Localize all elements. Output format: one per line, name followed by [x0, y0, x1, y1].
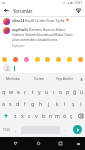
- button[interactable]: Share: [75, 7, 82, 14]
- button[interactable]: e: [15, 85, 22, 97]
- button[interactable]: u: [43, 85, 50, 97]
- button[interactable]: ö: [61, 109, 68, 122]
- button[interactable]: Emoji: [78, 57, 83, 62]
- button[interactable]: i: [77, 97, 85, 109]
- button[interactable]: Home: [27, 137, 49, 150]
- staticText: ,: [15, 127, 17, 132]
- staticText: Paylaşılan: [12, 44, 25, 48]
- button[interactable]: Send: [69, 122, 85, 137]
- staticText: r: [24, 88, 27, 95]
- button[interactable]: q: [0, 85, 8, 97]
- button[interactable]: g: [29, 97, 37, 109]
- button[interactable]: Teşekkürler: [52, 73, 78, 85]
- button[interactable]: p: [64, 85, 71, 97]
- staticText: v: [35, 112, 38, 119]
- button[interactable]: Emoji: [24, 57, 29, 62]
- button[interactable]: f: [21, 97, 29, 109]
- button[interactable]: t: [29, 85, 36, 97]
- staticText: ı: [53, 88, 55, 95]
- button[interactable]: Emoji: [2, 57, 7, 62]
- staticText: u: [45, 88, 49, 95]
- button[interactable]: x: [19, 109, 26, 122]
- staticText: Turizm: [34, 77, 45, 81]
- staticText: Yorumlar: [13, 8, 33, 14]
- button[interactable]: Backspace: [75, 109, 85, 122]
- button[interactable]: Back: [3, 7, 10, 14]
- button[interactable]: n: [47, 109, 54, 122]
- staticText: o: [59, 88, 63, 95]
- staticText: ü: [80, 88, 84, 95]
- staticText: 19:47: [74, 1, 83, 5]
- button[interactable]: Emoji: [35, 57, 40, 62]
- staticText: ?123: [3, 128, 10, 132]
- staticText: a: [2, 100, 5, 107]
- button[interactable]: j: [45, 97, 53, 109]
- staticText: n: [49, 112, 53, 119]
- button[interactable]: Emoji: [45, 57, 50, 62]
- button[interactable]: c: [26, 109, 33, 122]
- button[interactable]: Hide keyboard: [71, 137, 85, 150]
- button[interactable]: ü: [78, 85, 85, 97]
- button[interactable]: s: [7, 97, 14, 109]
- staticText: y: [38, 88, 41, 95]
- button[interactable]: k: [53, 97, 61, 109]
- button[interactable]: ?123: [0, 122, 12, 137]
- staticText: z: [14, 112, 17, 119]
- button[interactable]: o: [57, 85, 64, 97]
- button[interactable]: Recents: [49, 137, 71, 150]
- staticText: .: [64, 127, 66, 132]
- staticText: e: [17, 88, 20, 95]
- staticText: w: [9, 88, 14, 95]
- staticText: x: [21, 112, 24, 119]
- staticText: ş: [72, 100, 75, 107]
- button[interactable]: z: [11, 109, 19, 122]
- staticText: s: [9, 100, 12, 107]
- button[interactable]: d: [14, 97, 21, 109]
- button[interactable]: ulkse24 Keyifli Günler Pınar Teyfik: [0, 18, 85, 25]
- button[interactable]: r: [22, 85, 29, 97]
- button[interactable]: l: [61, 97, 69, 109]
- button[interactable]: ğ: [71, 85, 78, 97]
- button[interactable]: h: [37, 97, 45, 109]
- button[interactable]: Emoji: [67, 57, 72, 62]
- button[interactable]: Shift: [0, 109, 11, 122]
- button[interactable]: Voice input: [78, 73, 85, 85]
- staticText: t: [32, 88, 34, 95]
- button[interactable]: Turizm: [26, 73, 52, 85]
- button[interactable]: Emoji: [13, 57, 18, 62]
- button[interactable]: ,: [12, 122, 20, 137]
- button[interactable]: ı: [50, 85, 57, 97]
- button[interactable]: w: [8, 85, 15, 97]
- staticText: l: [64, 100, 66, 107]
- staticText: m: [55, 112, 60, 119]
- button[interactable]: v: [33, 109, 40, 122]
- button[interactable]: Emoji: [56, 57, 61, 62]
- staticText: ozgeltwllv Daneme Bunusu Haber Sözlerin …: [12, 27, 74, 42]
- staticText: ğ: [73, 88, 77, 95]
- staticText: p: [66, 88, 70, 95]
- button[interactable]: ç: [68, 109, 75, 122]
- staticText: g: [31, 100, 35, 107]
- button[interactable]: y: [36, 85, 43, 97]
- staticText: ulkse24 Keyifli Günler Pınar Teyfik: [12, 18, 65, 22]
- staticText: h: [39, 100, 43, 107]
- button[interactable]: Merhaba: [0, 73, 26, 85]
- staticText: b: [42, 112, 46, 119]
- button[interactable]: a: [0, 97, 7, 109]
- staticText: ö: [63, 112, 67, 119]
- staticText: ç: [70, 112, 73, 119]
- button[interactable]: Back: [4, 137, 27, 150]
- button[interactable]: b: [40, 109, 47, 122]
- button[interactable]: ş: [69, 97, 77, 109]
- staticText: c: [28, 112, 31, 119]
- staticText: k: [56, 100, 59, 107]
- staticText: q: [2, 88, 6, 95]
- staticText: Merhaba: [6, 77, 20, 81]
- button[interactable]: m: [54, 109, 61, 122]
- staticText: Teşekkürler: [56, 77, 74, 81]
- staticText: d: [16, 100, 20, 107]
- staticText: j: [48, 100, 50, 107]
- button[interactable]: ozgeltwllv Daneme Bunusu Haber Sözlerin …: [0, 27, 85, 48]
